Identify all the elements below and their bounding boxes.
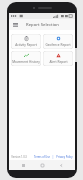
button[interactable]: Alert Report [43,51,73,66]
staticText: Terms of Use [34,155,50,159]
button[interactable]: Activity Report [11,34,41,49]
staticText: Report Selection [26,22,59,28]
button[interactable]: Open navigation menu [11,20,20,29]
staticText: Activity Report [15,43,37,47]
button[interactable]: Movement History [11,51,41,66]
button[interactable]: Back [56,160,66,170]
staticText: Geofence Report [45,43,71,47]
staticText: Version 1.0.3 [11,155,27,159]
button[interactable]: Geofence Report [43,34,73,49]
button[interactable]: Privacy Policy [56,155,73,159]
staticText: Alert Report [49,60,68,64]
button[interactable]: Home [37,160,47,170]
staticText: Movement History [12,60,40,64]
button[interactable]: Recent apps [18,160,28,170]
staticText: | [52,155,54,159]
staticText: Privacy Policy [56,155,73,159]
button[interactable]: Terms of Use [34,155,50,159]
